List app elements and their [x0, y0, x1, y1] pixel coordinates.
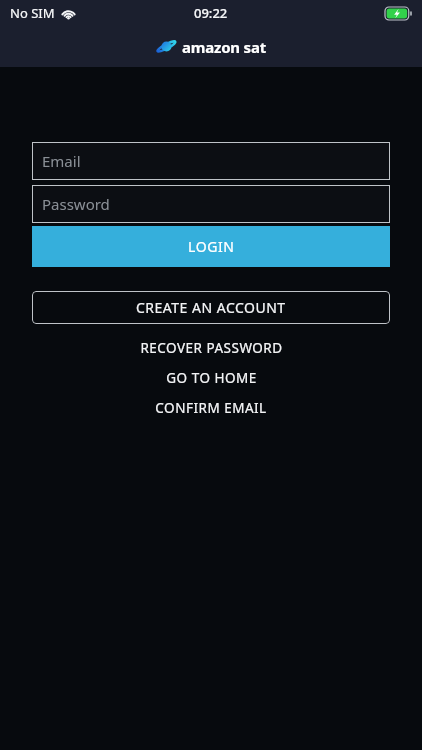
staticText: amazon sat: [182, 37, 267, 57]
staticText: Email: [42, 151, 81, 171]
button[interactable]: LOGIN: [32, 226, 390, 267]
staticText: No SIM: [10, 4, 55, 22]
button[interactable]: CONFIRM EMAIL: [0, 397, 422, 419]
button[interactable]: RECOVER PASSWORD: [0, 337, 422, 359]
button[interactable]: Password: [32, 185, 390, 223]
staticText: Password: [42, 194, 110, 214]
staticText: GO TO HOME: [166, 369, 257, 387]
staticText: CREATE AN ACCOUNT: [136, 298, 286, 317]
button[interactable]: Email: [32, 142, 390, 180]
staticText: 09:22: [194, 4, 228, 22]
button[interactable]: GO TO HOME: [0, 367, 422, 389]
staticText: LOGIN: [188, 237, 235, 256]
staticText: RECOVER PASSWORD: [140, 339, 283, 357]
staticText: CONFIRM EMAIL: [155, 399, 267, 417]
button[interactable]: CREATE AN ACCOUNT: [32, 291, 390, 324]
